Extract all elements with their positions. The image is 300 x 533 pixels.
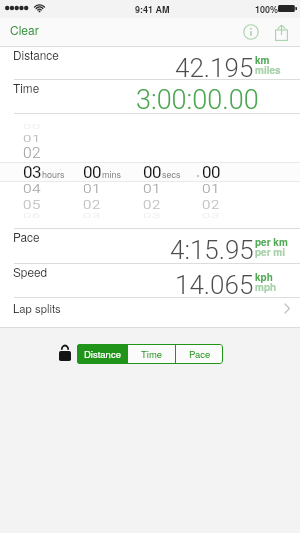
staticText: 0 <box>23 162 32 182</box>
staticText: Speed <box>13 263 48 280</box>
staticText: 0 <box>83 162 92 182</box>
staticText: 4:15.95 <box>170 235 254 265</box>
staticText: 14.065 <box>175 270 254 300</box>
staticText: 2 <box>152 198 161 212</box>
staticText: 0 <box>83 181 92 197</box>
staticText: 0 <box>23 181 32 197</box>
button[interactable]: 0 <box>13 114 73 222</box>
button[interactable]: Info <box>238 19 264 45</box>
staticText: Time <box>13 79 40 96</box>
staticText: 0 <box>202 162 211 182</box>
staticText: 9:41 AM <box>135 3 170 16</box>
staticText: per mi <box>255 245 286 259</box>
staticText: 1 <box>152 181 161 197</box>
button[interactable]: Clear <box>0 19 51 46</box>
staticText: Clear <box>10 21 39 38</box>
staticText: 0 <box>202 212 211 220</box>
staticText: 6 <box>32 212 41 220</box>
button[interactable]: Distance <box>77 344 127 364</box>
staticText: Pace <box>13 228 40 245</box>
staticText: 0 <box>202 181 211 197</box>
staticText: 0 <box>83 198 92 212</box>
staticText: kph <box>255 270 273 284</box>
staticText: 0 <box>23 123 32 131</box>
staticText: 2 <box>32 145 41 161</box>
staticText: per km <box>255 235 288 249</box>
staticText: 4 <box>32 181 41 197</box>
staticText: mph <box>255 280 277 294</box>
staticText: 3:00:00.00 <box>136 84 259 116</box>
staticText: 2 <box>211 198 220 212</box>
staticText: 1 <box>32 133 41 145</box>
staticText: Pace <box>189 347 211 361</box>
button[interactable]: 0 <box>73 114 133 222</box>
button[interactable]: Lap splits <box>0 293 300 323</box>
button[interactable]: Pace <box>176 344 223 364</box>
staticText: 0 <box>143 198 152 212</box>
staticText: 42.195 <box>175 53 254 83</box>
staticText: 0 <box>23 212 32 220</box>
staticText: 5 <box>32 198 41 212</box>
staticText: Lap splits <box>13 300 61 316</box>
button[interactable]: 0 <box>133 114 193 222</box>
staticText: mins <box>102 168 121 181</box>
staticText: 1 <box>211 181 220 197</box>
staticText: Time <box>141 347 163 361</box>
staticText: miles <box>255 63 281 77</box>
staticText: 0 <box>211 162 220 182</box>
staticText: secs <box>162 168 181 181</box>
staticText: 0 <box>152 162 161 182</box>
staticText: 3 <box>152 212 161 220</box>
staticText: 0 <box>92 162 101 182</box>
staticText: 3 <box>92 212 101 220</box>
staticText: 100% <box>255 3 279 16</box>
staticText: 0 <box>143 181 152 197</box>
staticText: 1 <box>92 181 101 197</box>
staticText: 0 <box>23 133 32 145</box>
button[interactable]: Time <box>128 344 175 364</box>
staticText: 0 <box>83 212 92 220</box>
staticText: 2 <box>92 198 101 212</box>
staticText: Distance <box>13 46 59 63</box>
staticText: Distance <box>84 347 121 361</box>
staticText: 0 <box>143 212 152 220</box>
staticText: km <box>255 53 270 67</box>
staticText: hours <box>42 168 65 181</box>
staticText: 0 <box>23 198 32 212</box>
button[interactable]: Share <box>268 19 294 45</box>
staticText: 0 <box>202 198 211 212</box>
staticText: 0 <box>23 145 32 161</box>
staticText: 0 <box>32 123 41 131</box>
staticText: 3 <box>211 212 220 220</box>
staticText: 3 <box>32 162 41 182</box>
button[interactable]: 0 <box>192 114 252 222</box>
staticText: 0 <box>143 162 152 182</box>
